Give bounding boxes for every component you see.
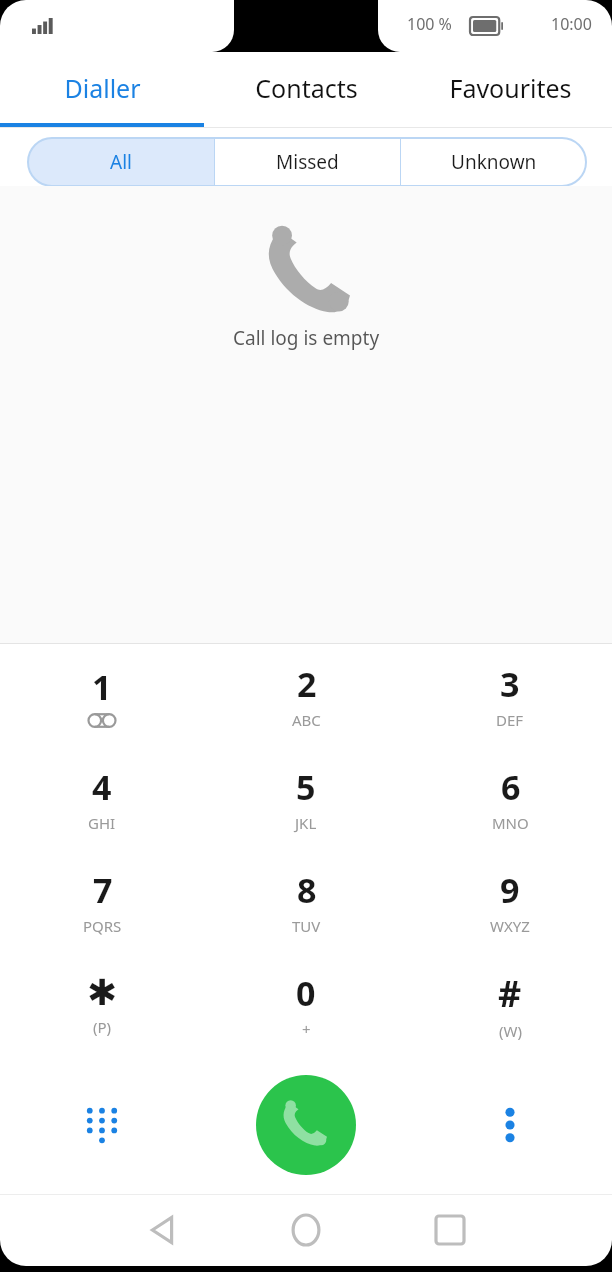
button[interactable]: Unknown	[401, 138, 586, 186]
staticText: Unknown	[451, 149, 537, 175]
button[interactable]: More options	[408, 1080, 612, 1170]
staticText: Contacts	[255, 71, 358, 105]
button[interactable]: Dialler	[0, 52, 204, 124]
staticText: TUV	[292, 916, 321, 936]
button[interactable]: 6	[408, 747, 612, 850]
staticText: 10:00	[551, 13, 592, 35]
button[interactable]: Missed	[215, 138, 400, 186]
staticText: WXYZ	[490, 916, 530, 936]
button[interactable]: ✱	[0, 953, 204, 1056]
button[interactable]: Favourites	[408, 52, 612, 124]
button[interactable]: 9	[408, 850, 612, 953]
button[interactable]: Back	[90, 1194, 234, 1266]
staticText: (W)	[499, 1021, 522, 1041]
button[interactable]: Recent apps	[378, 1194, 522, 1266]
staticText: JKL	[295, 813, 317, 833]
button[interactable]: 3	[408, 644, 612, 747]
button[interactable]: #	[408, 953, 612, 1056]
staticText: 3	[500, 661, 520, 707]
button[interactable]: Contacts	[204, 52, 408, 124]
button[interactable]: 8	[204, 850, 408, 953]
button[interactable]: 7	[0, 850, 204, 953]
staticText: 100 %	[407, 13, 452, 35]
staticText: All	[110, 149, 132, 175]
staticText: PQRS	[83, 916, 122, 936]
button[interactable]: 4	[0, 747, 204, 850]
staticText: +	[302, 1019, 311, 1039]
staticText: Missed	[276, 149, 339, 175]
staticText: Call log is empty	[233, 325, 380, 351]
staticText: Favourites	[449, 71, 572, 105]
staticText: ✱	[87, 972, 118, 1014]
staticText: 9	[500, 867, 520, 913]
button[interactable]: All	[28, 138, 214, 186]
staticText: Dialler	[64, 71, 141, 105]
staticText: DEF	[496, 710, 524, 730]
staticText: (P)	[93, 1017, 112, 1037]
staticText: GHI	[88, 813, 116, 833]
button[interactable]: 1	[0, 644, 204, 747]
staticText: 2	[297, 661, 317, 707]
button[interactable]: 5	[204, 747, 408, 850]
button[interactable]: Home	[234, 1194, 378, 1266]
staticText: ABC	[292, 710, 321, 730]
staticText: #	[498, 969, 522, 1018]
button[interactable]: Call	[204, 1070, 408, 1180]
staticText: 8	[297, 867, 317, 913]
staticText: 6	[501, 764, 521, 810]
staticText: 5	[296, 764, 316, 810]
staticText: 0	[296, 970, 316, 1016]
staticText: 7	[93, 867, 113, 913]
button[interactable]: 2	[204, 644, 408, 747]
button[interactable]: Show dial pad	[0, 1080, 204, 1170]
staticText: 4	[92, 764, 112, 810]
staticText: MNO	[492, 813, 529, 833]
staticText: 1	[92, 664, 112, 710]
button[interactable]: 0	[204, 953, 408, 1056]
